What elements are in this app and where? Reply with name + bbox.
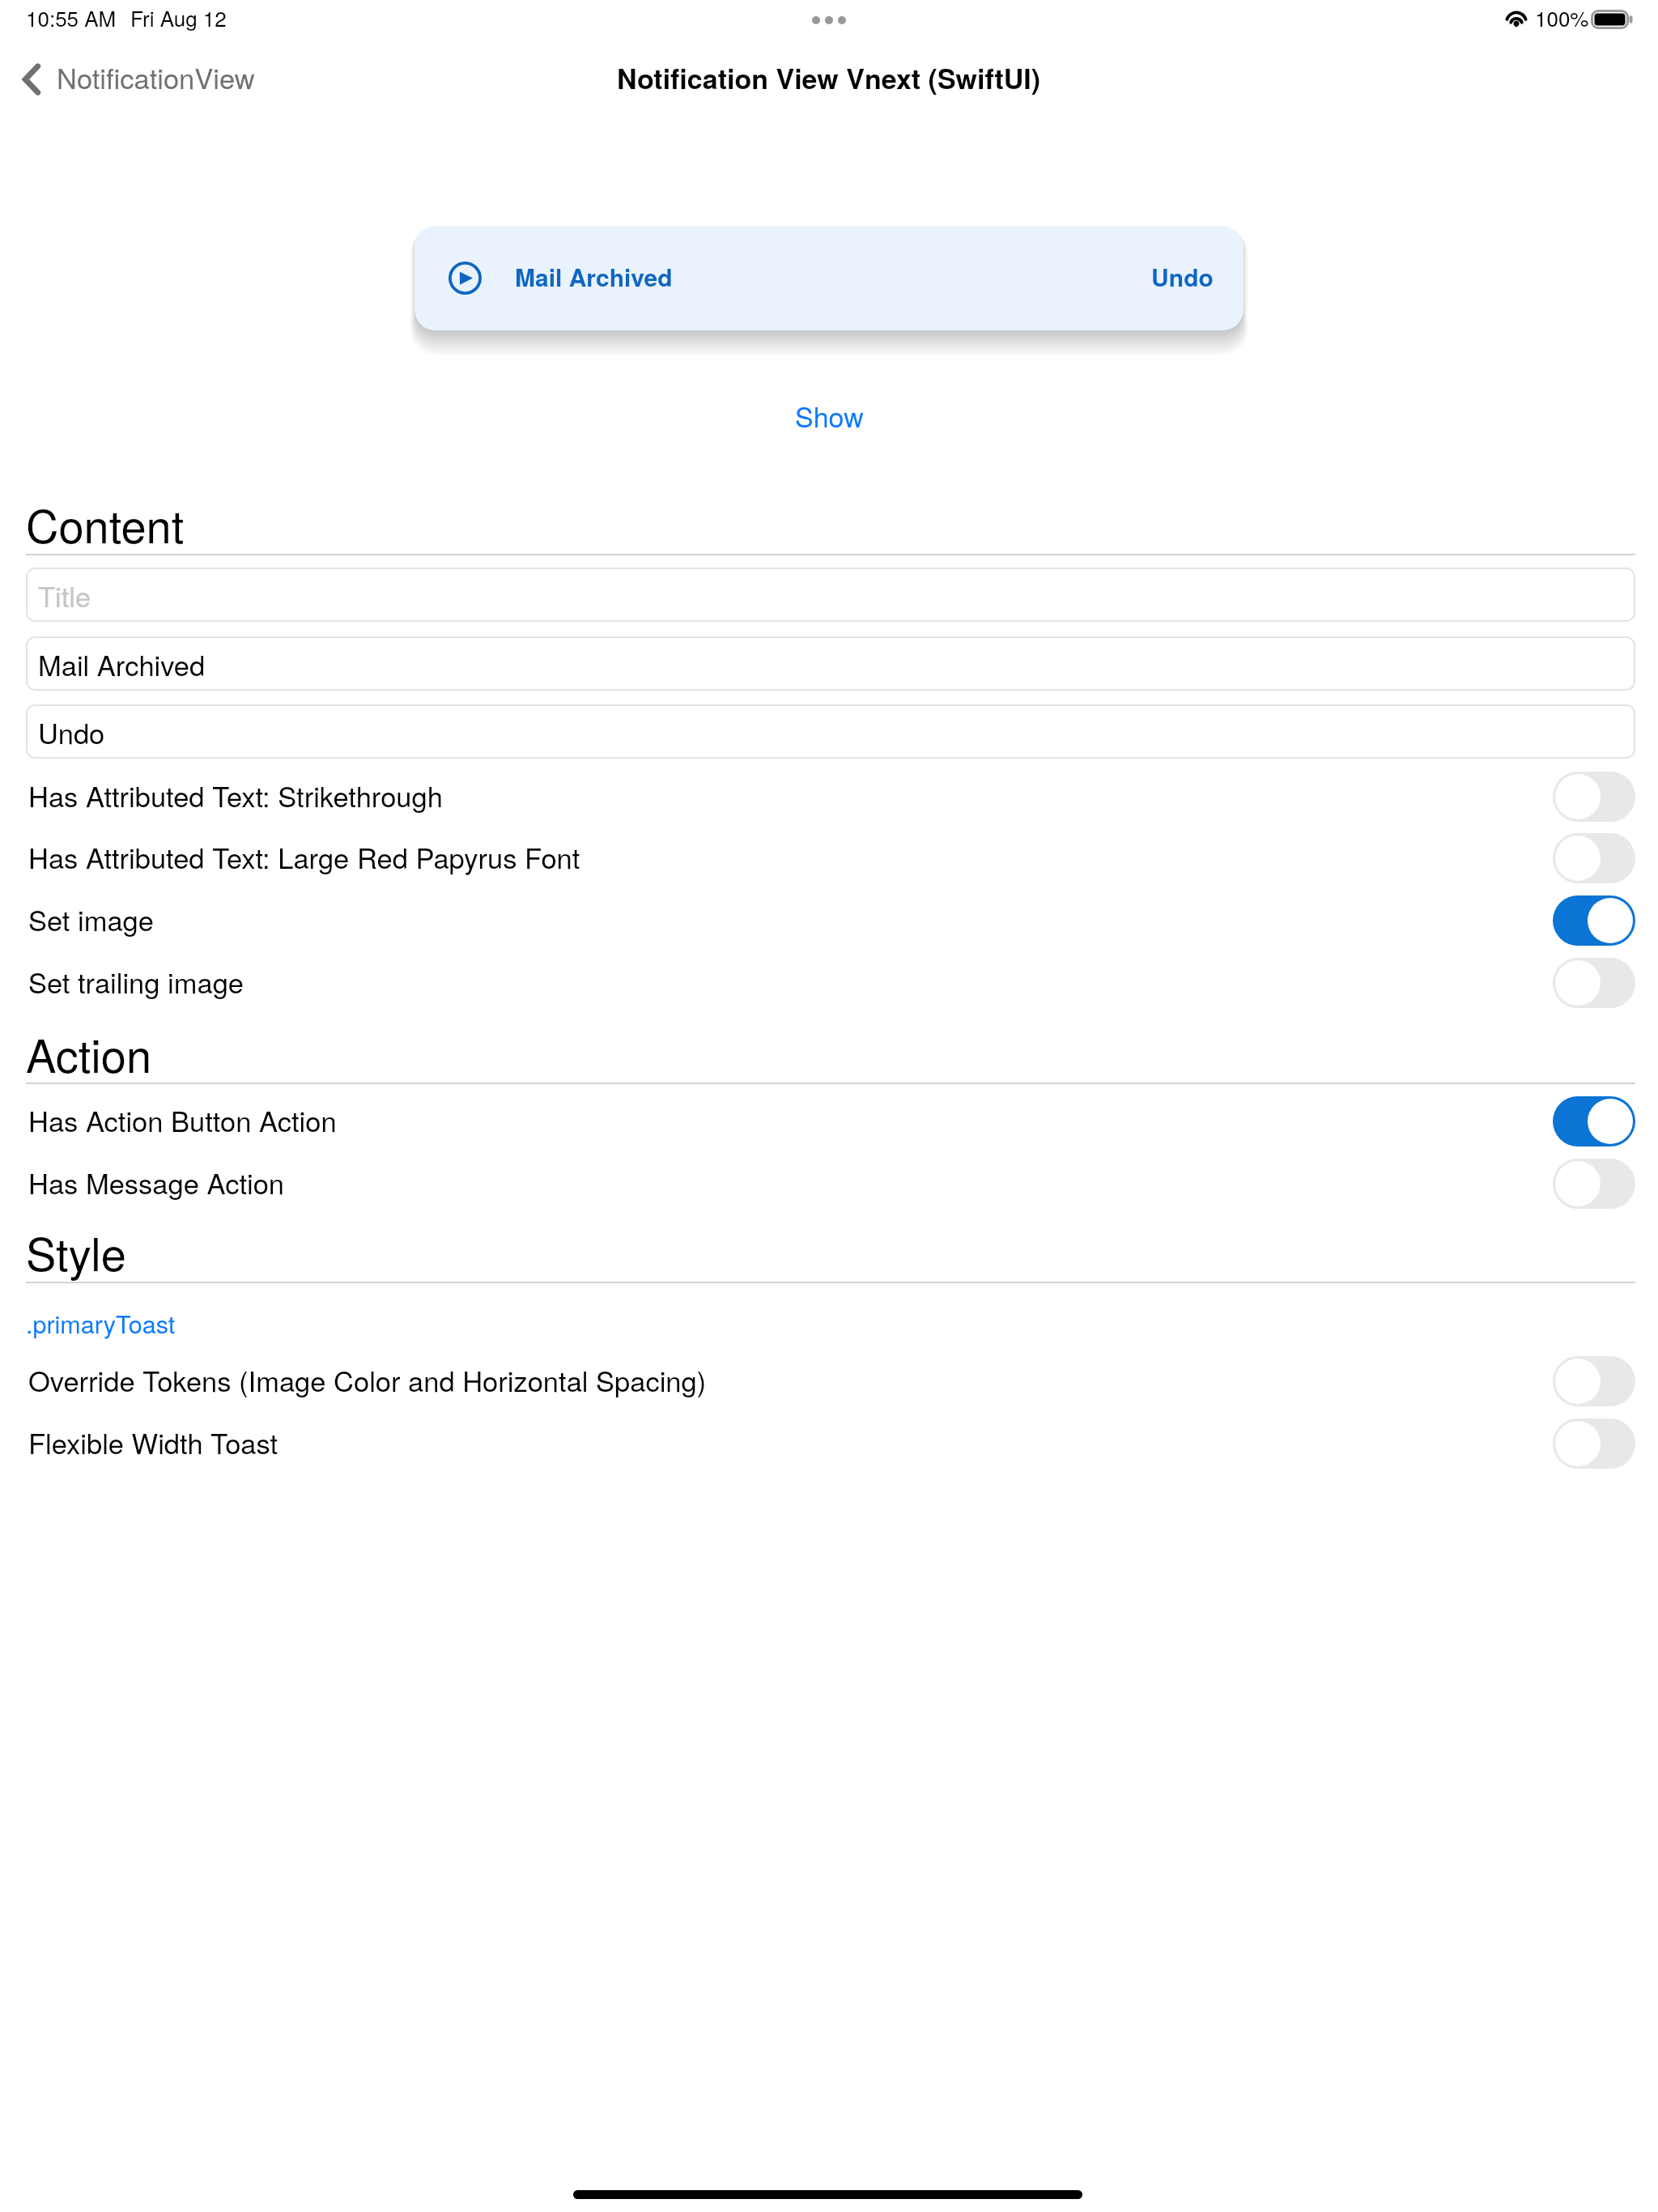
button[interactable]: Switch off	[1553, 833, 1635, 883]
button[interactable]: Set image	[0, 887, 1658, 950]
button[interactable]: Has Attributed Text: Large Red Papyrus F…	[0, 825, 1658, 887]
other: Back	[21, 64, 40, 95]
button[interactable]: Switch off	[1553, 958, 1635, 1008]
button[interactable]: Switch off	[1553, 772, 1635, 822]
staticText: Fri Aug 12	[130, 2, 227, 32]
button[interactable]: Switch on	[1553, 1096, 1635, 1146]
button[interactable]: Switch on	[1553, 895, 1635, 946]
staticText: 100%	[1535, 2, 1589, 32]
staticText: Title	[38, 575, 91, 615]
staticText: Set trailing image	[28, 961, 244, 1001]
button[interactable]: Set trailing image	[0, 950, 1658, 1012]
staticText: Content	[26, 491, 185, 556]
button[interactable]: Flexible Width Toast	[0, 1410, 1658, 1473]
button[interactable]: Switch off	[1553, 1419, 1635, 1469]
button[interactable]: Title	[26, 568, 1635, 622]
button[interactable]: Undo	[1135, 244, 1230, 308]
staticText: Mail Archived	[38, 644, 206, 683]
staticText: 10:55 AM	[26, 2, 117, 32]
button[interactable]: Switch off	[1553, 1159, 1635, 1209]
staticText: Undo	[38, 712, 105, 751]
button[interactable]: .primaryToast	[0, 0, 150, 36]
staticText: Has Attributed Text: Strikethrough	[28, 775, 443, 815]
button[interactable]: Back	[21, 58, 255, 100]
button[interactable]: Switch off	[1553, 1356, 1635, 1406]
staticText: NotificationView	[57, 57, 255, 96]
staticText: Set image	[28, 899, 154, 938]
button[interactable]: Has Action Button Action	[0, 1088, 1658, 1151]
button[interactable]: Undo	[26, 704, 1635, 759]
button[interactable]: Has Message Action	[0, 1151, 1658, 1213]
button[interactable]: Show	[795, 396, 864, 436]
staticText: Has Attributed Text: Large Red Papyrus F…	[28, 836, 580, 876]
staticText: Has Message Action	[28, 1162, 285, 1202]
staticText: Has Action Button Action	[28, 1100, 337, 1139]
button[interactable]: Mail Archived	[414, 226, 1243, 330]
button[interactable]: Override Tokens (Image Color and Horizon…	[0, 1348, 1658, 1410]
staticText: Mail Archived	[515, 259, 673, 294]
staticText: Override Tokens (Image Color and Horizon…	[28, 1359, 707, 1399]
staticText: Action	[26, 1021, 152, 1086]
staticText: Notification View Vnext (SwiftUI)	[617, 58, 1041, 98]
staticText: Style	[26, 1219, 126, 1284]
button[interactable]: Has Attributed Text: Strikethrough	[0, 764, 1658, 826]
staticText: Flexible Width Toast	[28, 1422, 278, 1461]
staticText: Undo	[1151, 259, 1214, 294]
button[interactable]: Mail Archived	[26, 636, 1635, 691]
